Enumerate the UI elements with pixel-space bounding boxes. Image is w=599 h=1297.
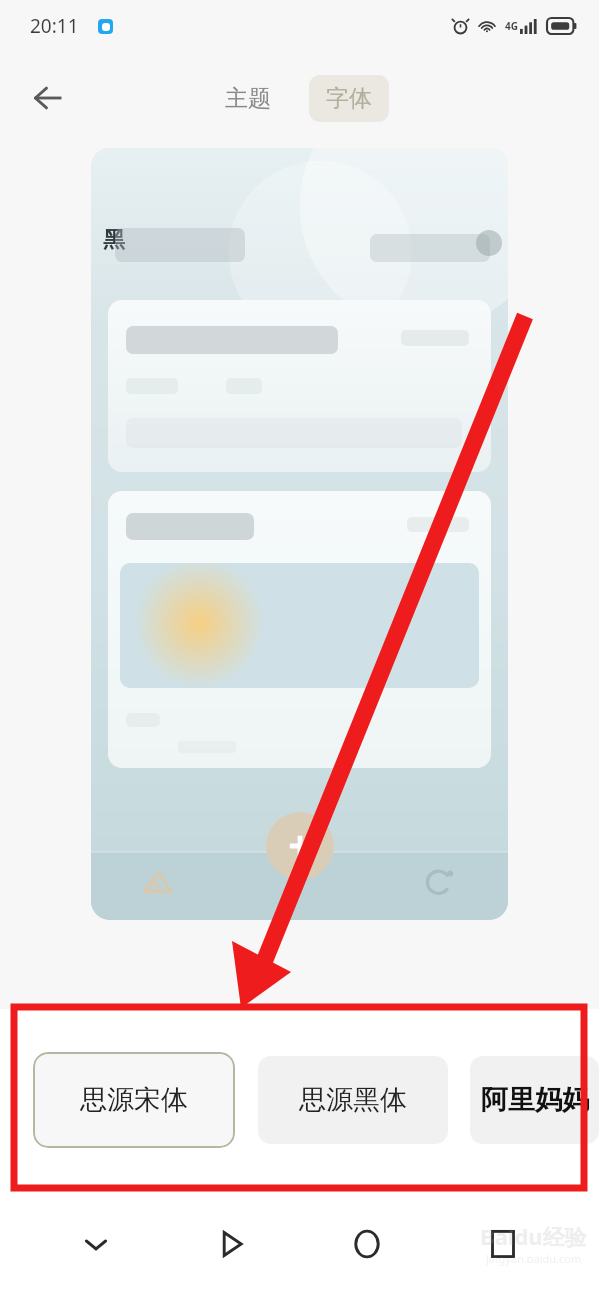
button[interactable]: 阿里妈妈 xyxy=(470,1056,599,1144)
staticText: 黑 xyxy=(103,226,125,254)
staticText: Baidu经验 xyxy=(480,1221,587,1251)
button[interactable]: Back xyxy=(20,70,76,126)
staticText: 20:11 xyxy=(30,13,79,39)
button[interactable]: 字体 xyxy=(309,75,389,122)
button[interactable]: Hide keyboard xyxy=(28,1208,163,1280)
staticText: 思源黑体 xyxy=(299,1083,407,1117)
button[interactable]: 思源黑体 xyxy=(258,1056,448,1144)
button[interactable]: Add xyxy=(266,812,334,880)
staticText: 阿里妈妈 xyxy=(481,1083,589,1117)
button[interactable]: Recent apps xyxy=(435,1208,571,1280)
staticText: 主题 xyxy=(225,84,271,113)
button[interactable]: 黑 xyxy=(91,148,508,920)
button[interactable]: 主题 xyxy=(211,76,285,121)
staticText: 字体 xyxy=(326,84,372,113)
button[interactable]: Back xyxy=(163,1208,299,1280)
button[interactable]: Home xyxy=(299,1208,435,1280)
button[interactable]: 思源宋体 xyxy=(33,1052,235,1148)
button[interactable]: Wallpapers xyxy=(139,862,179,902)
button[interactable]: Night mode xyxy=(420,862,460,902)
staticText: 4G xyxy=(505,19,518,33)
staticText: jingyan.baidu.com xyxy=(486,1251,582,1266)
staticText: 思源宋体 xyxy=(80,1083,188,1117)
